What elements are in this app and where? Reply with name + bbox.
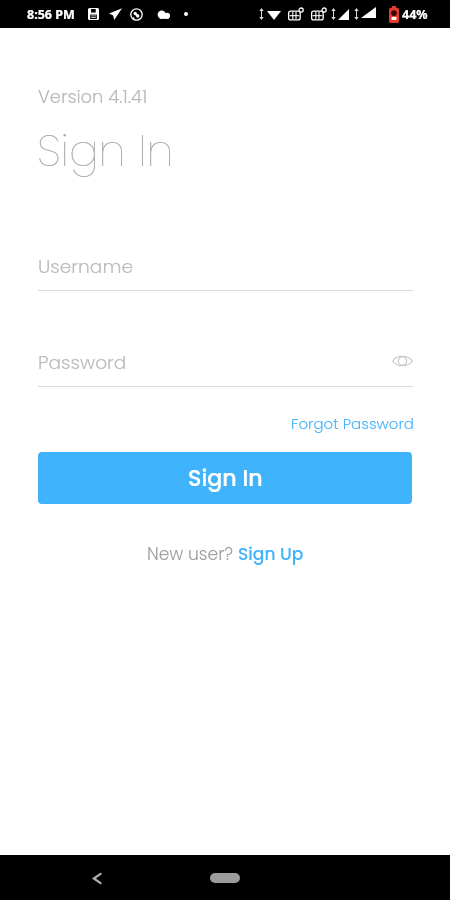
staticText: Username — [38, 253, 133, 279]
staticText: Version 4.1.41 — [38, 84, 148, 109]
staticText: 8:56 PM — [27, 6, 75, 23]
staticText: Sign In — [188, 463, 263, 494]
staticText: 44% — [402, 6, 428, 23]
staticText: Sign In — [37, 120, 174, 182]
staticText: New user? — [147, 542, 238, 566]
button[interactable]: Sign In — [38, 452, 412, 504]
button[interactable]: Sign Up — [238, 542, 304, 566]
button[interactable]: Show password — [386, 347, 419, 374]
button[interactable]: Forgot Password — [291, 413, 414, 434]
staticText: Password — [38, 349, 127, 375]
button[interactable]: Home — [190, 864, 260, 892]
button[interactable]: Back — [79, 860, 115, 896]
